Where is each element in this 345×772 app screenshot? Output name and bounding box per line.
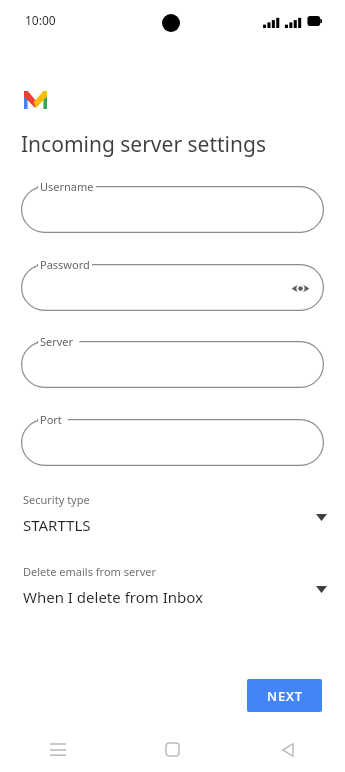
button[interactable]: Password xyxy=(21,264,324,311)
staticText: NEXT xyxy=(267,687,303,705)
button[interactable]: Port xyxy=(21,419,324,466)
button[interactable]: Show password xyxy=(288,276,312,300)
button[interactable]: Home xyxy=(115,727,230,772)
button[interactable]: Security type xyxy=(0,492,345,538)
staticText: STARTTLS xyxy=(23,515,91,535)
button[interactable]: Username xyxy=(21,186,324,233)
button[interactable]: Back xyxy=(230,727,345,772)
staticText: Security type xyxy=(23,492,90,507)
staticText: Username xyxy=(40,179,94,194)
staticText: When I delete from Inbox xyxy=(23,587,203,607)
button[interactable]: Server xyxy=(21,341,324,388)
button[interactable]: NEXT xyxy=(247,679,322,712)
staticText: Delete emails from server xyxy=(23,564,157,579)
button[interactable]: Recent apps xyxy=(0,727,115,772)
staticText: Incoming server settings xyxy=(21,130,266,159)
staticText: Server xyxy=(40,334,74,349)
staticText: Port xyxy=(40,412,62,427)
staticText: 10:00 xyxy=(25,12,56,28)
button[interactable]: Delete emails from server xyxy=(0,564,345,610)
staticText: Password xyxy=(40,257,90,272)
